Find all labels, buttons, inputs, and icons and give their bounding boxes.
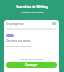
staticText: Exercícios de Writing — [16, 5, 48, 9]
staticText: Seu progresso — [6, 22, 24, 26]
staticText: 0/5 — [52, 22, 57, 26]
staticText: Descreva sua rotina — [6, 39, 30, 43]
button[interactable]: Começar — [6, 62, 57, 68]
staticText: Melhore sua escrita — [21, 10, 44, 13]
staticText: Toque para começar — [4, 57, 59, 60]
button[interactable]: Nível — [6, 34, 14, 37]
staticText: Escreva um texto curto — [6, 44, 32, 47]
staticText: Começar — [25, 63, 38, 67]
